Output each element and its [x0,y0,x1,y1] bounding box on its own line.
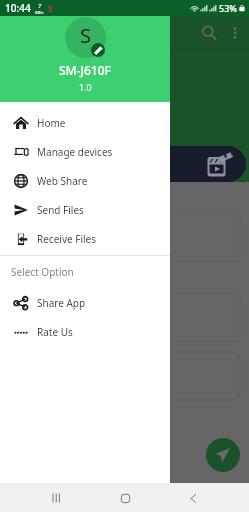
staticText: Send Files [37,203,84,217]
button[interactable]: Edit device name [91,43,105,57]
button[interactable]: Manage devices [0,137,170,166]
button[interactable]: Send [206,438,240,472]
button[interactable]: Send Files [0,195,170,224]
button[interactable]: Search [199,23,219,43]
staticText: S [80,22,91,49]
button[interactable] [0,146,246,182]
button[interactable]: Rate Us [0,317,170,346]
staticText: Select Option [11,265,74,279]
staticText: KB/s [35,10,44,15]
button[interactable]: Home [112,485,138,511]
button[interactable]: Back [180,485,206,511]
staticText: 10:44 [5,1,31,15]
staticText: 7 [38,2,42,10]
staticText: Share App [37,296,86,310]
staticText: Web Share [37,174,88,188]
staticText: 53% [219,2,237,14]
staticText: 1.0 [79,81,92,93]
staticText: Home [37,116,66,130]
button[interactable]: Receive Files [0,224,170,253]
button[interactable]: More options [225,23,245,43]
button[interactable]: Home [0,108,170,137]
staticText: Rate Us [37,325,73,339]
staticText: S [48,3,53,14]
staticText: Receive Files [37,232,96,246]
button[interactable]: Recent apps [43,485,69,511]
button[interactable]: Share App [0,288,170,317]
staticText: SM-J610F [59,62,111,78]
staticText: Manage devices [37,145,113,159]
button[interactable]: Web Share [0,166,170,195]
